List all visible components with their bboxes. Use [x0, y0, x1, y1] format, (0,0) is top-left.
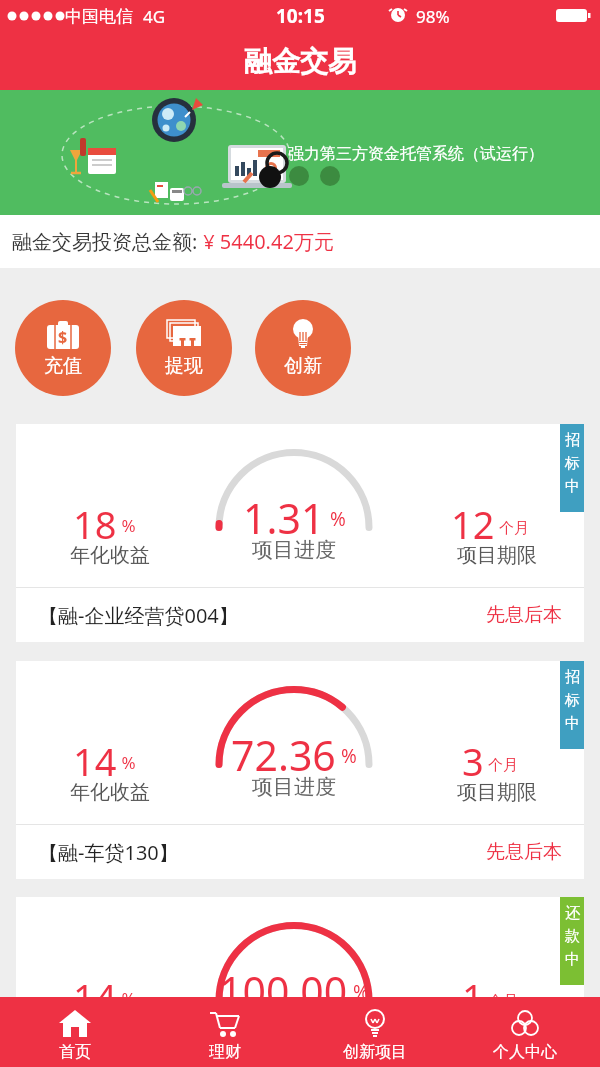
staticText: 【融-车贷130】 [38, 839, 179, 866]
staticText: $ [58, 326, 68, 348]
staticText: % [117, 751, 136, 774]
staticText: 18 [73, 498, 117, 542]
staticText: 提现 [165, 354, 203, 378]
staticText: 项目进度 [252, 537, 336, 563]
staticText: 招 [565, 668, 580, 687]
staticText: 14 [73, 971, 117, 1015]
staticText: 标 [565, 454, 580, 473]
staticText: 个人中心 [493, 1042, 557, 1062]
staticText: 项目期限 [457, 780, 537, 805]
button[interactable]: 提现 [136, 300, 232, 396]
button[interactable]: 创新 [255, 300, 351, 396]
staticText: 先息后本 [486, 603, 562, 627]
staticText: % [348, 979, 369, 1005]
button[interactable]: 14 [16, 661, 584, 879]
staticText: 融金交易投资总金额: [12, 228, 198, 255]
button[interactable]: 个人中心 [450, 997, 600, 1062]
staticText: 中国电信 [65, 6, 133, 27]
staticText: 100.00 [219, 963, 348, 1011]
staticText: 标 [565, 691, 580, 710]
staticText: 【融-企业经营贷004】 [38, 602, 239, 629]
staticText: 项目期限 [457, 1016, 537, 1041]
staticText: 年化收益 [70, 780, 150, 805]
staticText: 项目期限 [457, 543, 537, 568]
staticText: ¥ 5440.42万元 [198, 228, 334, 255]
staticText: 中 [565, 950, 580, 969]
staticText: 14 [73, 735, 117, 779]
staticText: 还 [565, 904, 580, 923]
staticText: 年化收益 [70, 1016, 150, 1041]
button[interactable]: 创新项目 [300, 997, 450, 1062]
button[interactable]: 18 [16, 424, 584, 642]
staticText: 首页 [59, 1042, 91, 1062]
staticText: 1.31 [243, 490, 325, 538]
staticText: % [336, 743, 357, 769]
staticText: % [117, 514, 136, 537]
staticText: 98% [416, 5, 450, 28]
staticText: 融金交易 [244, 44, 356, 79]
staticText: 理财 [209, 1042, 241, 1062]
button[interactable]: 首页 [0, 997, 150, 1062]
staticText: 充值 [44, 354, 82, 378]
staticText: 强力第三方资金托管系统（试运行） [288, 144, 544, 164]
staticText: 3 [462, 735, 484, 779]
staticText: 72.36 [231, 727, 336, 775]
button[interactable]: 理财 [150, 997, 300, 1062]
staticText: 10:15 [276, 3, 325, 29]
staticText: 先息后本 [486, 840, 562, 864]
staticText: 4G [143, 5, 166, 28]
staticText: 个月 [495, 517, 529, 537]
staticText: % [117, 987, 136, 1010]
staticText: 中 [565, 477, 580, 496]
staticText: 年化收益 [70, 543, 150, 568]
button[interactable]: $ [15, 300, 111, 396]
staticText: 12 [451, 498, 495, 542]
staticText: % [325, 506, 346, 532]
staticText: 创新 [284, 354, 322, 378]
button[interactable]: 14 [16, 897, 584, 1067]
staticText: 创新项目 [343, 1042, 407, 1062]
staticText: 项目进度 [252, 774, 336, 800]
staticText: 1 [462, 971, 484, 1015]
staticText: 个月 [484, 754, 518, 774]
staticText: 个月 [484, 990, 518, 1010]
staticText: 中 [565, 714, 580, 733]
staticText: 款 [565, 927, 580, 946]
staticText: 招 [565, 431, 580, 450]
button[interactable]: 融金交易投资总金额: [0, 215, 600, 268]
